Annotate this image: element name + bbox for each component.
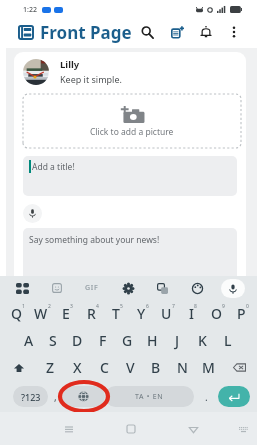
button[interactable]: R [80,300,105,327]
staticText: P [237,304,246,323]
button[interactable]: Say something about your news! [23,228,237,276]
staticText: 2 [48,303,51,310]
button[interactable]: K [190,327,215,354]
button[interactable]: GIF [81,277,103,299]
staticText: B [151,358,161,377]
staticText: TA • EN [135,392,164,402]
button[interactable]: T [105,300,130,327]
staticText: O [211,304,222,323]
staticText: H [147,331,158,350]
button[interactable]: Home [120,418,142,440]
button[interactable]: Back [182,418,204,440]
button[interactable]: Notifications [195,21,217,43]
button[interactable]: O [205,300,230,327]
staticText: S [49,331,57,350]
staticText: Click to add a picture [90,126,174,138]
button[interactable]: Enter [218,386,250,407]
button[interactable]: , [48,386,62,407]
button[interactable]: Settings [118,278,138,298]
button[interactable]: Translate [152,278,172,298]
button[interactable]: C [91,354,117,381]
button[interactable]: F [90,327,115,354]
button[interactable]: Backspace [221,354,257,381]
staticText: E [62,304,70,323]
button[interactable]: S [41,327,65,354]
staticText: 3 [70,303,73,310]
button[interactable]: Search [136,21,158,43]
button[interactable]: G [115,327,140,354]
button[interactable]: . [194,386,218,407]
staticText: 7 [172,303,175,310]
button[interactable]: Recents [58,418,80,440]
staticText: ?123 [21,391,41,403]
staticText: R [87,304,96,323]
button[interactable]: B [143,354,169,381]
button[interactable]: Q [6,300,30,327]
staticText: 1:22 [23,5,37,15]
button[interactable]: W [30,300,55,327]
staticText: Y [137,304,146,323]
staticText: M [202,358,215,377]
staticText: Add a title! [32,161,75,173]
staticText: I [189,304,194,323]
staticText: K [198,331,207,350]
staticText: Q [11,304,22,323]
button[interactable]: New post [166,21,188,43]
staticText: X [73,358,82,377]
staticText: U [161,304,172,323]
button[interactable]: ?123 [13,386,48,407]
staticText: , [54,390,57,404]
button[interactable]: M [195,354,221,381]
button[interactable]: Themes [187,278,207,298]
button[interactable]: Add a title! [23,156,237,196]
staticText: C [100,358,109,377]
button[interactable]: X [64,354,91,381]
button[interactable]: U [155,300,180,327]
staticText: J [175,331,180,350]
button[interactable]: Stickers [47,278,67,298]
staticText: Front Page [40,21,132,44]
staticText: Keep it simple. [60,73,122,85]
button[interactable]: Hide keyboard [232,418,254,440]
staticText: 6 [146,303,149,310]
button[interactable]: I [180,300,205,327]
button[interactable]: Click to add a picture [23,94,241,148]
staticText: F [99,331,107,350]
button[interactable]: More options [224,22,244,42]
staticText: 5 [120,303,123,310]
button[interactable]: Change language [62,386,105,407]
staticText: 9 [222,303,225,310]
button[interactable]: Voice input [23,204,42,223]
staticText: 0 [246,303,249,310]
button[interactable]: P [230,300,255,327]
button[interactable]: Y [130,300,155,327]
staticText: 4 [96,303,99,310]
staticText: Lilly [60,58,80,71]
staticText: Z [46,358,55,377]
button[interactable]: Voice typing [221,279,245,298]
button[interactable]: H [140,327,165,354]
staticText: 1 [22,303,25,310]
staticText: A [24,331,34,350]
button[interactable]: TA • EN [105,386,194,407]
staticText: . [205,390,208,404]
button[interactable]: J [165,327,190,354]
staticText: L [224,331,232,350]
button[interactable]: N [169,354,195,381]
button[interactable]: A [17,327,41,354]
button[interactable]: Shift [0,354,37,381]
button[interactable]: V [117,354,143,381]
button[interactable]: Apps [12,278,32,298]
button[interactable]: Z [37,354,64,381]
staticText: V [126,358,135,377]
button[interactable]: L [215,327,240,354]
staticText: G [122,331,133,350]
staticText: T [112,304,120,323]
staticText: D [72,331,83,350]
staticText: Say something about your news! [29,234,160,246]
button[interactable]: E [55,300,80,327]
staticText: W [34,304,48,323]
staticText: GIF [85,283,99,293]
button[interactable]: D [65,327,90,354]
staticText: N [177,358,188,377]
